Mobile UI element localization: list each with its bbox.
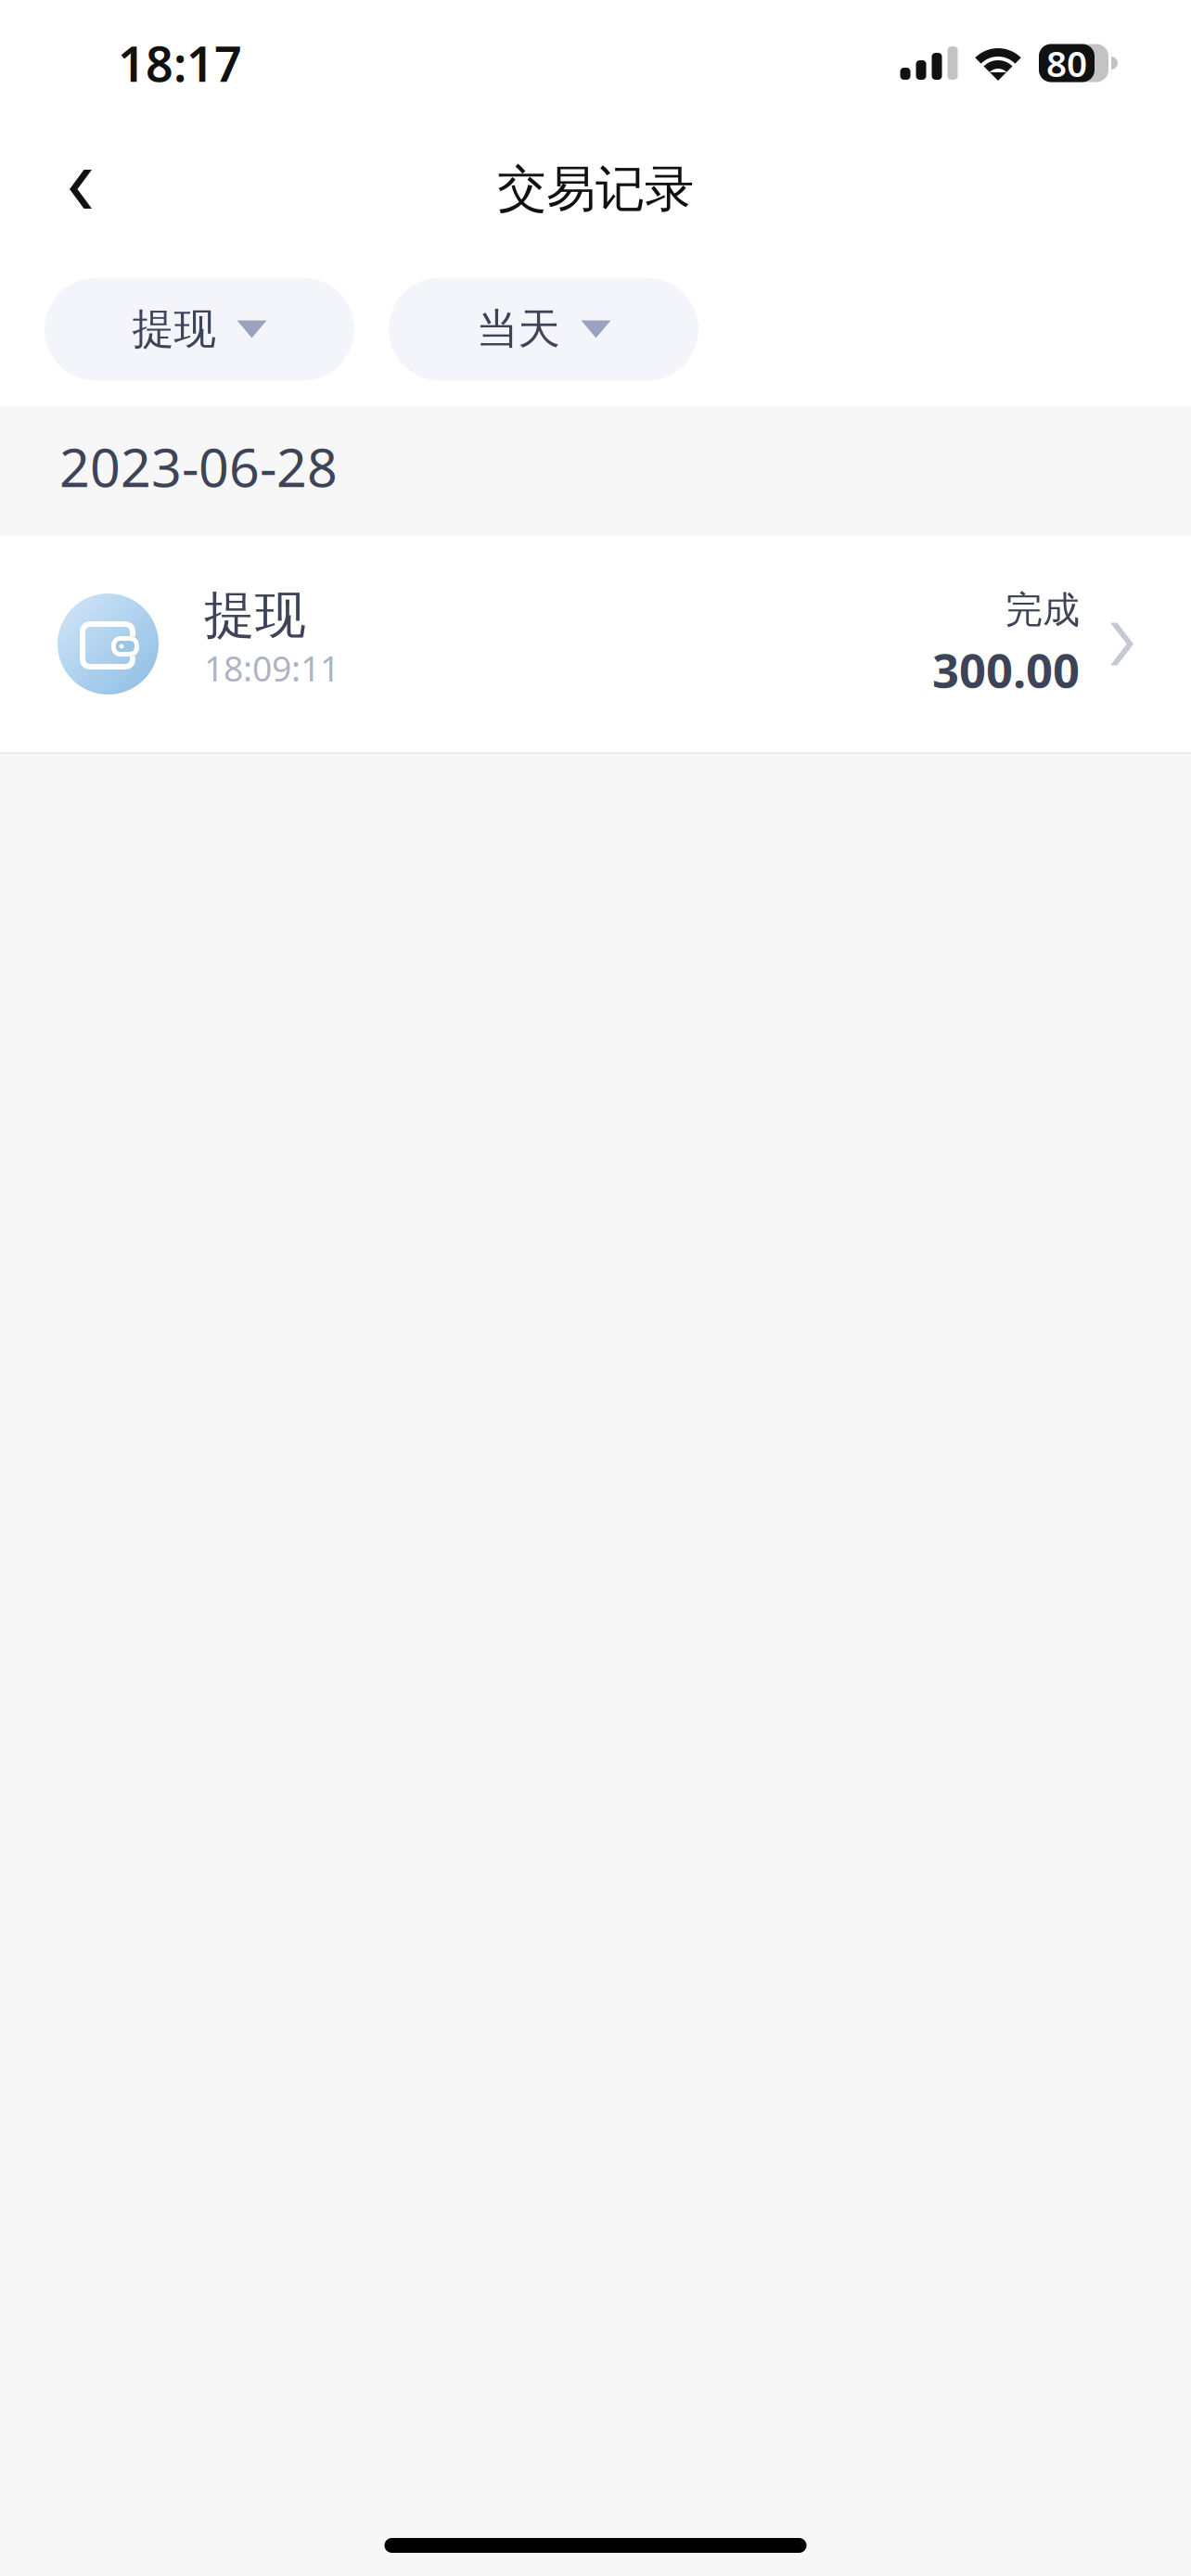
- staticText: 提现: [204, 584, 306, 646]
- staticText: 2023-06-28: [59, 431, 338, 502]
- staticText: 交易记录: [497, 159, 694, 219]
- staticText: 300.00: [932, 638, 1080, 701]
- staticText: 完成: [1005, 587, 1080, 633]
- staticText: 18:09:11: [204, 645, 339, 691]
- button[interactable]: 当天: [389, 278, 698, 381]
- staticText: 提现: [132, 303, 216, 355]
- button[interactable]: 提现: [0, 536, 1191, 752]
- button[interactable]: 返回: [34, 143, 127, 236]
- staticText: 80: [1046, 39, 1087, 87]
- staticText: 18:17: [118, 31, 242, 95]
- button[interactable]: 提现: [45, 278, 354, 381]
- staticText: 当天: [476, 303, 560, 355]
